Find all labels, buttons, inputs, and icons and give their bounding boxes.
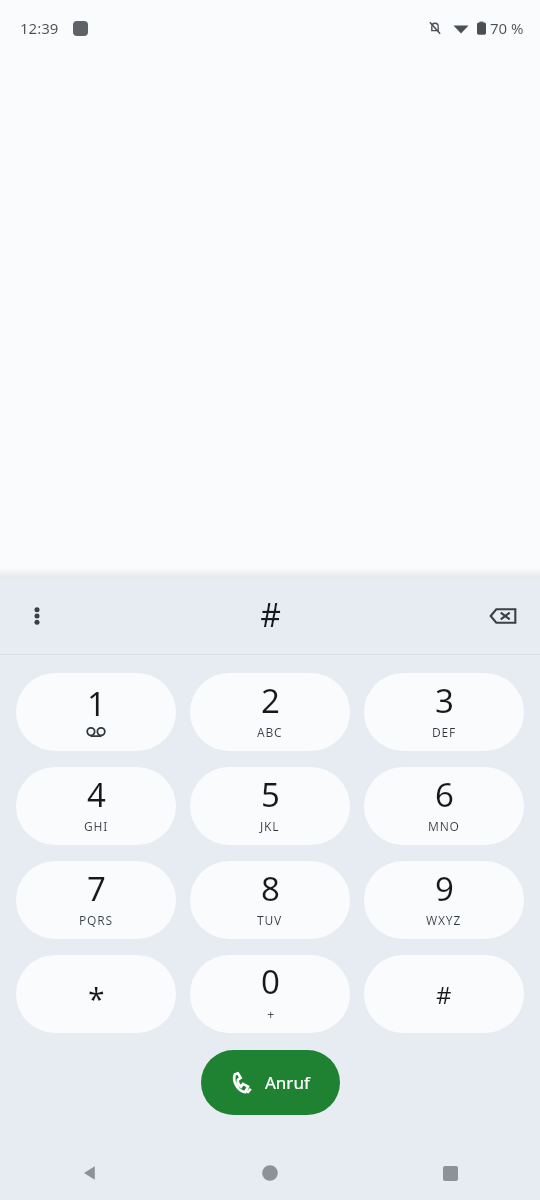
button[interactable]: Recent apps [360, 1146, 540, 1200]
staticText: MNO [428, 818, 460, 834]
button[interactable]: 2 [190, 673, 350, 751]
staticText: 12:39 [20, 18, 59, 38]
staticText: GHI [84, 818, 109, 834]
button[interactable]: More options [10, 589, 64, 643]
staticText: 5 [261, 772, 280, 817]
staticText: 70 % [490, 18, 524, 38]
staticText: JKL [260, 818, 280, 834]
staticText: 3 [435, 678, 454, 723]
staticText: 0 [261, 959, 280, 1004]
button[interactable]: 0 [190, 955, 350, 1033]
button[interactable]: Anruf [201, 1050, 340, 1115]
button[interactable]: 4 [16, 767, 176, 845]
button[interactable]: Home [180, 1146, 360, 1200]
button[interactable]: Backspace [476, 589, 530, 643]
staticText: 8 [261, 866, 280, 911]
button[interactable]: 7 [16, 861, 176, 939]
staticText: 1 [87, 681, 106, 726]
staticText: 6 [435, 772, 454, 817]
staticText: 4 [87, 772, 106, 817]
staticText: + [267, 1005, 275, 1023]
staticText: PQRS [79, 912, 113, 928]
button[interactable]: 6 [364, 767, 524, 845]
staticText: # [260, 593, 281, 637]
button[interactable]: 1 [16, 673, 176, 751]
staticText: DEF [432, 724, 457, 740]
staticText: TUV [257, 912, 283, 928]
button[interactable]: Back [0, 1146, 180, 1200]
button[interactable]: * [16, 955, 176, 1033]
button[interactable]: 8 [190, 861, 350, 939]
staticText: 2 [261, 678, 280, 723]
staticText: # [436, 978, 452, 1011]
button[interactable]: 9 [364, 861, 524, 939]
button[interactable]: 3 [364, 673, 524, 751]
staticText: ABC [257, 724, 283, 740]
staticText: * [88, 978, 105, 1019]
button[interactable]: 5 [190, 767, 350, 845]
staticText: Anruf [265, 1071, 310, 1094]
button[interactable]: # [364, 955, 524, 1033]
staticText: WXYZ [426, 912, 462, 928]
staticText: 9 [435, 866, 454, 911]
staticText: 7 [87, 866, 106, 911]
